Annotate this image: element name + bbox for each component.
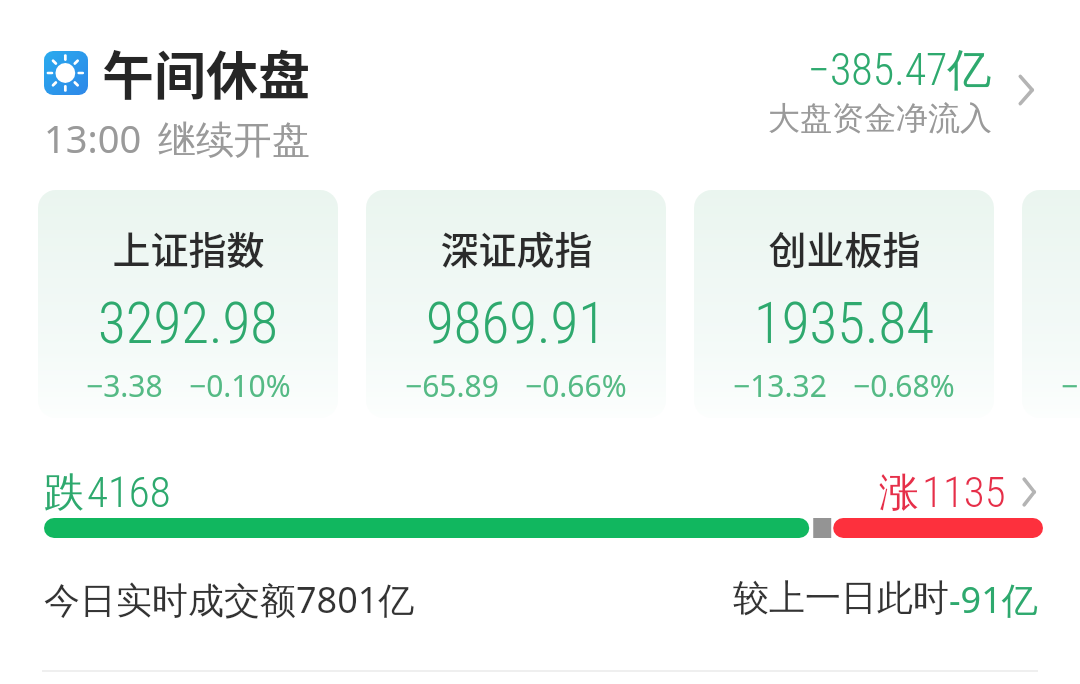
staticText: 1935.84 [754, 290, 934, 357]
staticText: 3292.98 [98, 290, 278, 357]
staticText: 深证成指 [440, 220, 593, 275]
other: 查看大盘资金净流入 [1013, 73, 1039, 107]
staticText: 午间休盘 [102, 35, 311, 110]
staticText: −16.40 [1061, 365, 1080, 406]
button[interactable]: 跌 [44, 467, 1040, 517]
staticText: 13:00 [44, 112, 142, 164]
staticText: 4168 [87, 467, 171, 517]
staticText: −0.68% [853, 365, 955, 406]
staticText: 涨 [879, 467, 919, 517]
staticText: 跌 [44, 467, 84, 517]
button[interactable]: 深证成指 [366, 190, 666, 418]
staticText: 上证指数 [112, 220, 265, 275]
staticText: 今日实时成交额7801亿 [44, 575, 415, 624]
staticText: −3.38 [86, 365, 163, 406]
staticText: −13.32 [733, 365, 827, 406]
staticText: -91亿 [949, 575, 1038, 624]
staticText: 创业板指 [768, 220, 921, 275]
button[interactable]: 北证50 [1022, 190, 1080, 418]
staticText: −0.66% [525, 365, 627, 406]
staticText: 大盘资金净流入 [768, 98, 992, 138]
other: 涨跌家数详情 [1018, 476, 1040, 508]
button[interactable]: 上证指数 [38, 190, 338, 418]
staticText: 1135 [922, 467, 1006, 517]
staticText: −0.10% [189, 365, 291, 406]
button[interactable]: 创业板指 [694, 190, 994, 418]
staticText: 9869.91 [426, 290, 606, 357]
staticText: 继续开盘 [158, 116, 310, 164]
button[interactable]: 午间休盘 [44, 35, 1039, 164]
staticText: −65.89 [405, 365, 499, 406]
staticText: 较上一日此时 [733, 575, 949, 620]
staticText: −385.47亿 [808, 43, 992, 98]
